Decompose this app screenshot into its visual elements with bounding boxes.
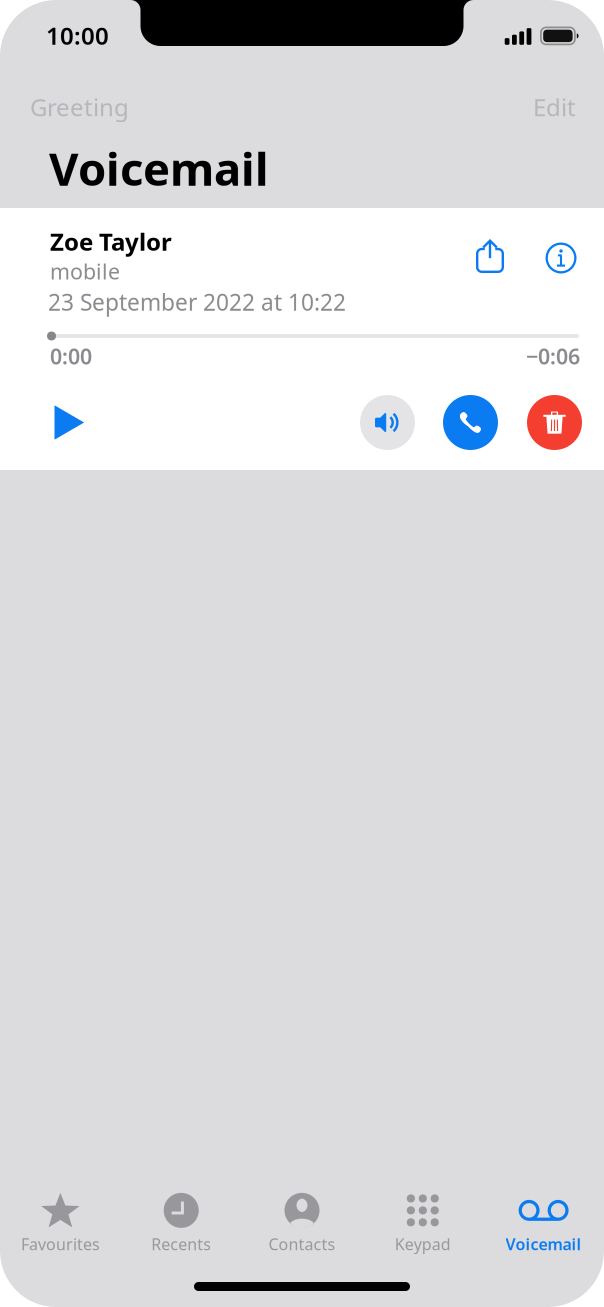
staticText: Recents <box>151 1233 211 1255</box>
button[interactable]: Call back <box>443 395 498 450</box>
button[interactable]: Delete <box>527 395 582 450</box>
staticText: Voicemail <box>49 138 269 198</box>
button[interactable]: Recents <box>121 1188 242 1258</box>
button[interactable]: Speaker <box>360 395 415 450</box>
button[interactable]: Share <box>467 234 513 278</box>
staticText: Voicemail <box>506 1233 582 1255</box>
button[interactable]: Edit <box>525 83 584 131</box>
staticText: −0:06 <box>526 342 580 370</box>
button[interactable]: Play <box>41 395 96 450</box>
staticText: Keypad <box>395 1233 451 1255</box>
staticText: 10:00 <box>46 19 109 51</box>
button[interactable]: Keypad <box>362 1188 483 1258</box>
staticText: Contacts <box>268 1233 335 1255</box>
staticText: 0:00 <box>50 342 92 370</box>
button[interactable]: More info <box>538 236 584 280</box>
staticText: Zoe Taylor <box>50 225 172 257</box>
staticText: Greeting <box>30 91 129 123</box>
staticText: Favourites <box>21 1233 100 1255</box>
button[interactable]: Contacts <box>242 1188 362 1258</box>
button[interactable]: Favourites <box>0 1188 121 1258</box>
button[interactable]: Voicemail <box>483 1188 604 1258</box>
staticText: mobile <box>50 257 120 285</box>
staticText: Edit <box>533 91 576 123</box>
staticText: 23 September 2022 at 10:22 <box>48 287 346 317</box>
button[interactable]: Greeting <box>22 83 137 131</box>
